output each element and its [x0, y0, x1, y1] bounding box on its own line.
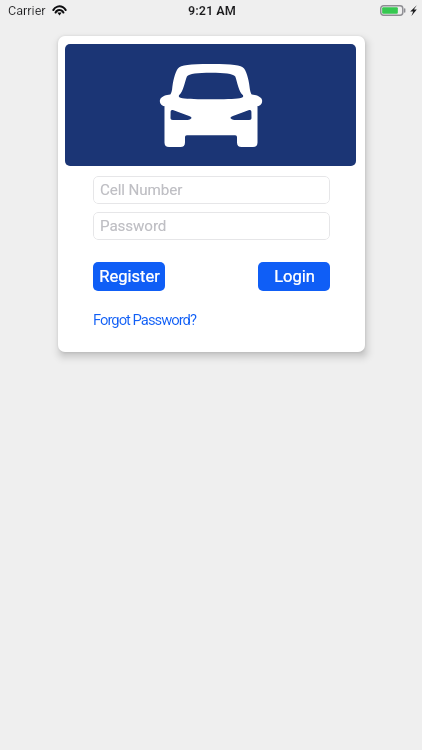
button[interactable]: Login — [258, 262, 330, 291]
button[interactable]: Register — [93, 262, 165, 291]
staticText: 9:21 AM — [188, 3, 236, 18]
staticText: Password — [100, 217, 167, 235]
staticText: Login — [274, 267, 315, 286]
staticText: Carrier — [8, 3, 46, 18]
staticText: Register — [99, 267, 160, 286]
button[interactable]: Password — [93, 212, 330, 240]
staticText: Cell Number — [100, 181, 183, 199]
button[interactable]: Cell Number — [93, 176, 330, 204]
button[interactable]: Forgot Password? — [93, 311, 196, 328]
